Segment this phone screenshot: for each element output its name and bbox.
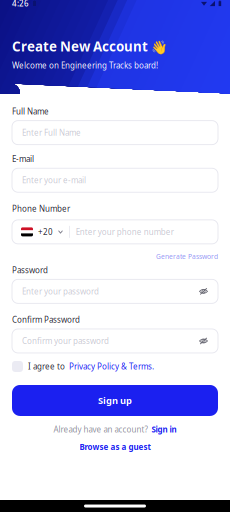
staticText: Browse as a guest [79, 442, 150, 452]
button[interactable]: Generate Password [156, 252, 218, 261]
staticText: Sign in [151, 424, 176, 435]
button[interactable]: Sign up [12, 385, 218, 416]
staticText: Enter Full Name [22, 127, 81, 138]
staticText: Enter your password [22, 286, 99, 297]
staticText: Generate Password [156, 252, 218, 261]
staticText: 4:26 [12, 0, 29, 9]
button[interactable]: Enter your e-mail [12, 168, 218, 192]
staticText: Create New Account 👋 [12, 37, 168, 55]
staticText: Password [12, 265, 48, 275]
staticText: +20 [38, 227, 53, 237]
button[interactable]: +20 [12, 220, 218, 244]
staticText: Full Name [12, 106, 49, 117]
staticText: I agree to [28, 361, 65, 372]
staticText: Sign up [98, 394, 132, 407]
button[interactable]: Enter Full Name [12, 121, 218, 145]
staticText: Phone Number [12, 203, 70, 214]
staticText: Confirm your password [22, 336, 109, 346]
staticText: E-mail [12, 154, 34, 164]
button[interactable]: Browse as a guest [79, 442, 150, 452]
button[interactable]: I agree to [12, 361, 218, 372]
staticText: Privacy Policy & Terms. [69, 361, 154, 372]
staticText: Already have an account? [53, 424, 147, 435]
staticText: Enter your phone number [76, 227, 174, 237]
staticText: Confirm Password [12, 314, 80, 325]
staticText: Enter your e-mail [22, 175, 86, 185]
button[interactable]: Enter your password [12, 279, 218, 303]
button[interactable]: Confirm your password [12, 329, 218, 353]
button[interactable]: Sign in [151, 424, 176, 435]
staticText: Welcome on Engineering Tracks board! [12, 60, 158, 71]
